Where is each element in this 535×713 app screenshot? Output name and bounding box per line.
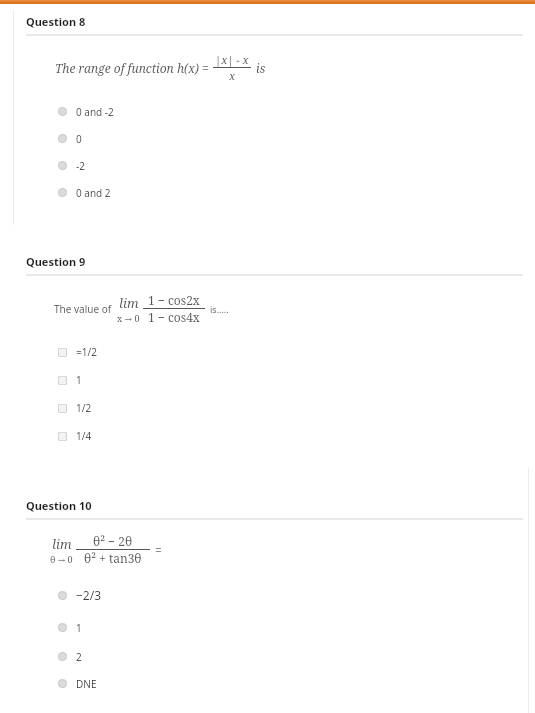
button[interactable]: 1/4 (0, 422, 535, 450)
staticText: Question 10 (26, 498, 92, 513)
button[interactable]: −2/3 (0, 578, 535, 612)
staticText: 1 (76, 621, 82, 635)
staticText: Question 8 (26, 14, 86, 29)
staticText: 0 and -2 (76, 105, 114, 119)
staticText: 1 − cos4x (148, 309, 200, 325)
staticText: The range of function h(x) = (55, 60, 209, 76)
staticText: 1 (76, 373, 82, 387)
button[interactable]: 0 and 2 (0, 179, 535, 206)
button[interactable]: 1 (0, 612, 535, 643)
staticText: x (229, 68, 236, 83)
staticText: Question 9 (26, 254, 86, 269)
staticText: x → 0 (117, 312, 140, 324)
button[interactable]: 0 (0, 125, 535, 152)
staticText: θ² − 2θ (93, 533, 133, 549)
button[interactable]: 0 and -2 (0, 98, 535, 125)
staticText: is..... (210, 303, 229, 315)
staticText: lim (52, 535, 72, 553)
staticText: θ² + tan3θ (84, 550, 142, 566)
staticText: 1/4 (76, 429, 92, 443)
staticText: -2 (76, 159, 85, 173)
staticText: 2 (76, 650, 82, 664)
button[interactable]: 1/2 (0, 394, 535, 422)
staticText: is (256, 60, 266, 76)
staticText: 1/2 (76, 401, 92, 415)
staticText: −2/3 (76, 587, 102, 603)
staticText: lim (119, 294, 139, 312)
button[interactable]: 2 (0, 643, 535, 670)
staticText: |x| − x (215, 52, 249, 67)
staticText: θ → 0 (50, 553, 73, 565)
staticText: 0 and 2 (76, 186, 111, 200)
button[interactable]: -2 (0, 152, 535, 179)
staticText: 1 − cos2x (148, 292, 200, 308)
button[interactable]: =1/2 (0, 338, 535, 366)
button[interactable]: 1 (0, 366, 535, 394)
staticText: = (155, 542, 162, 558)
staticText: 0 (76, 132, 82, 146)
staticText: DNE (76, 677, 97, 691)
button[interactable]: DNE (0, 670, 535, 697)
staticText: The value of (54, 302, 112, 316)
staticText: =1/2 (76, 345, 97, 359)
